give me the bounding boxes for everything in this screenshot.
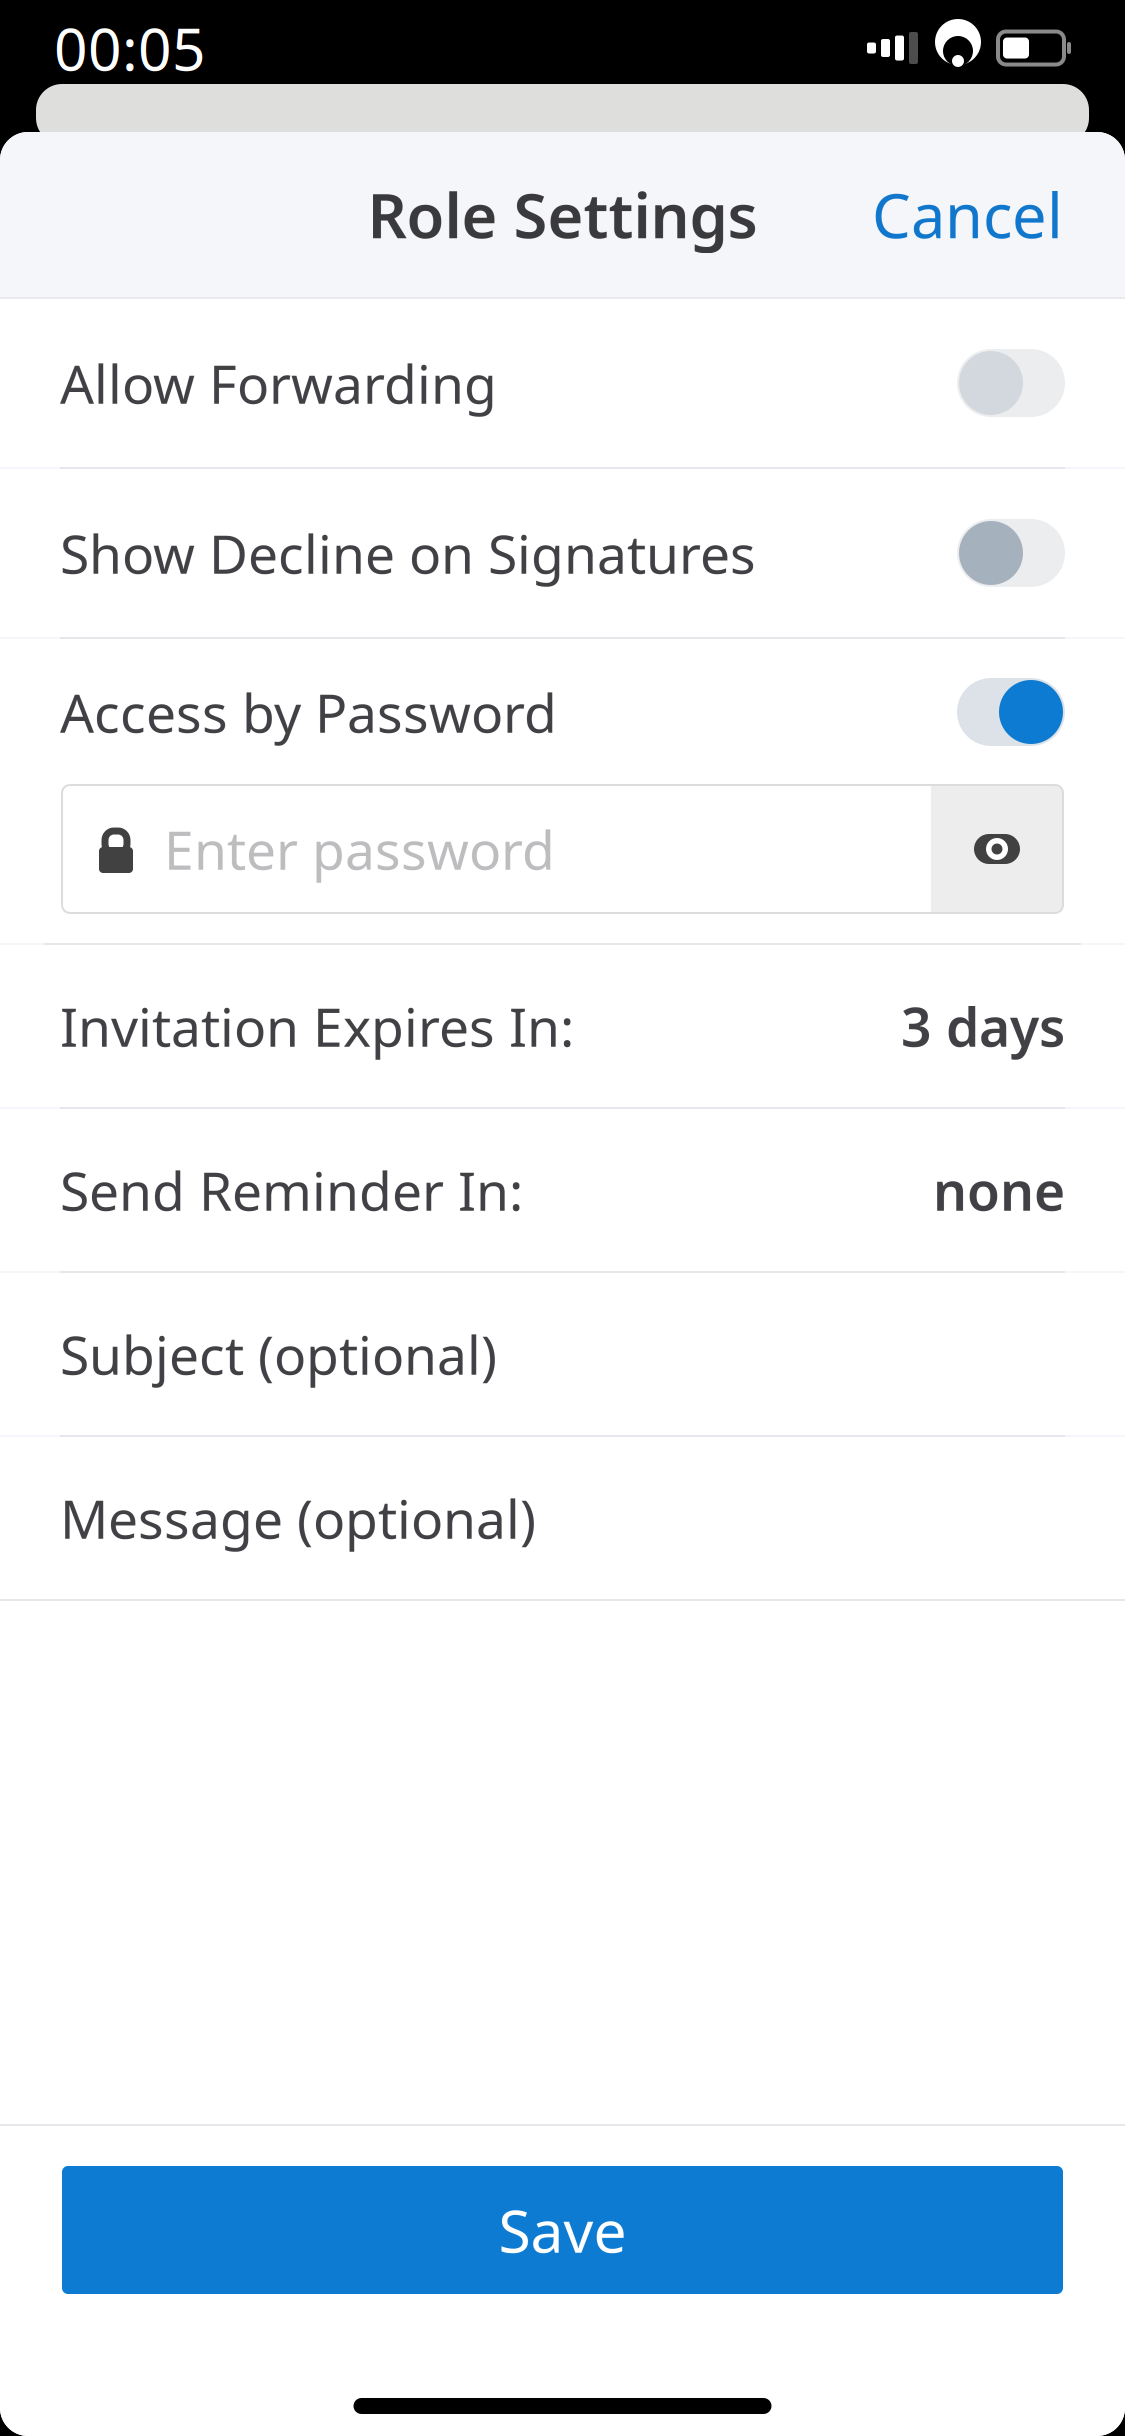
- staticText: 3 days: [901, 991, 1065, 1061]
- staticText: Enter password: [164, 814, 555, 884]
- staticText: Role Settings: [367, 174, 757, 255]
- staticText: Send Reminder In:: [60, 1155, 523, 1225]
- button[interactable]: Message (optional): [0, 1437, 1125, 1599]
- staticText: Show Decline on Signatures: [60, 518, 756, 588]
- button[interactable]: Show password: [931, 785, 1063, 913]
- button[interactable]: Send Reminder In:: [0, 1109, 1125, 1271]
- button[interactable]: Cancel: [842, 158, 1093, 271]
- staticText: Message (optional): [60, 1483, 536, 1553]
- staticText: Allow Forwarding: [60, 348, 497, 418]
- staticText: Access by Password: [60, 677, 557, 747]
- button[interactable]: Access by Password: [0, 639, 1125, 785]
- button[interactable]: Invitation Expires In:: [0, 945, 1125, 1107]
- button[interactable]: Subject (optional): [0, 1273, 1125, 1435]
- staticText: 00:05: [54, 9, 206, 87]
- button[interactable]: Show Decline on Signatures: [0, 469, 1125, 637]
- staticText: Subject (optional): [60, 1319, 497, 1389]
- staticText: Save: [498, 2191, 626, 2269]
- button[interactable]: Save: [0, 2166, 1125, 2294]
- button[interactable]: Allow Forwarding: [0, 299, 1125, 467]
- staticText: Invitation Expires In:: [60, 991, 574, 1061]
- staticText: none: [933, 1155, 1065, 1225]
- staticText: Cancel: [872, 174, 1063, 255]
